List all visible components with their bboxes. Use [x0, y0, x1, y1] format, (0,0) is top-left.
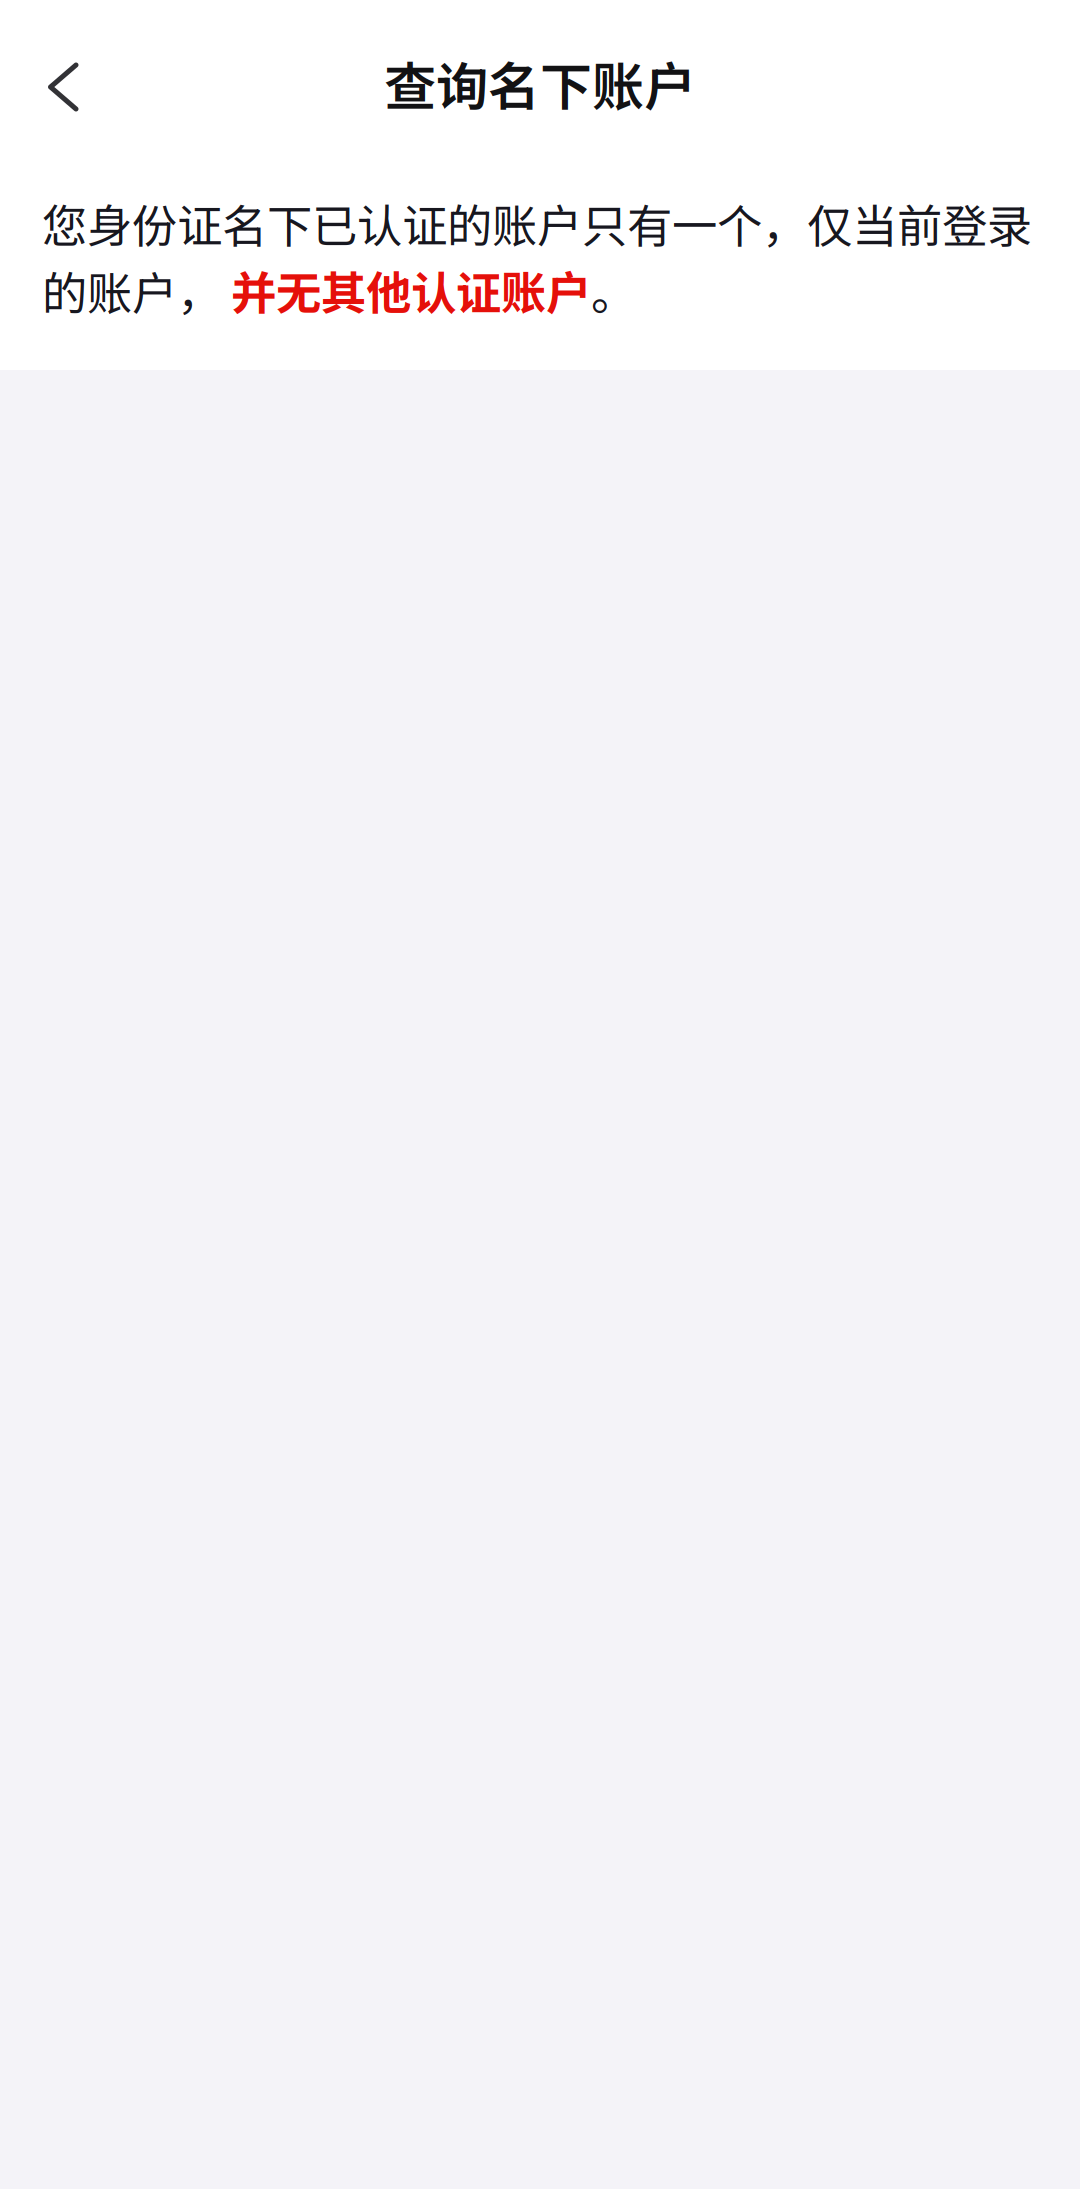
- staticText: 您身份证名下已认证的账户只有一个，仅当前登录的账户， 并无其他认证账户。: [42, 191, 1032, 322]
- button[interactable]: 返回: [0, 0, 128, 166]
- staticText: 查询名下账户: [384, 45, 696, 121]
